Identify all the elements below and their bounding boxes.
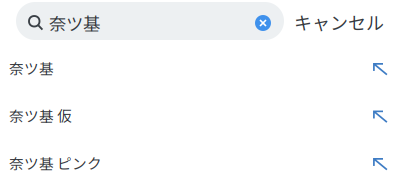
staticText: 奈ツ基 bbox=[49, 10, 100, 36]
staticText: 奈ツ基 ピンク bbox=[9, 152, 102, 173]
button[interactable]: 奈ツ基 ピンク bbox=[0, 139, 400, 184]
button[interactable]: キャンセル bbox=[284, 2, 398, 40]
button[interactable]: Clear search text bbox=[255, 15, 271, 31]
staticText: 奈ツ基 bbox=[9, 57, 54, 78]
button[interactable]: 奈ツ基 仮 bbox=[0, 91, 400, 139]
button[interactable]: 奈ツ基 bbox=[0, 44, 400, 91]
staticText: キャンセル bbox=[294, 9, 384, 35]
staticText: 奈ツ基 仮 bbox=[9, 105, 72, 126]
